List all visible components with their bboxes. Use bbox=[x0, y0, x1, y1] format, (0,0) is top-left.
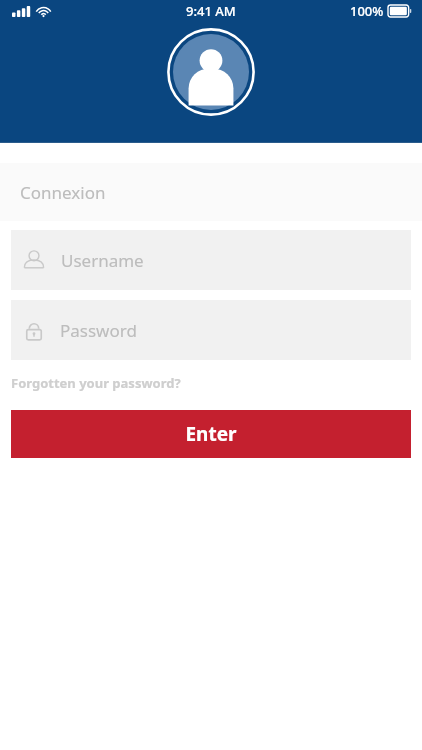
button[interactable]: Enter bbox=[11, 410, 411, 458]
staticText: Connexion bbox=[20, 181, 106, 204]
staticText: Enter bbox=[185, 421, 237, 447]
button[interactable]: Connexion bbox=[0, 163, 422, 221]
button[interactable]: Forgotten your password? bbox=[11, 374, 181, 392]
staticText: 9:41 AM bbox=[186, 2, 236, 20]
other: Profile avatar bbox=[167, 28, 255, 116]
staticText: Forgotten your password? bbox=[11, 374, 181, 392]
button[interactable]: Password bbox=[11, 300, 411, 360]
staticText: Username bbox=[61, 249, 144, 272]
button[interactable]: Username bbox=[11, 230, 411, 290]
staticText: 100% bbox=[350, 2, 384, 20]
staticText: Password bbox=[60, 319, 137, 342]
